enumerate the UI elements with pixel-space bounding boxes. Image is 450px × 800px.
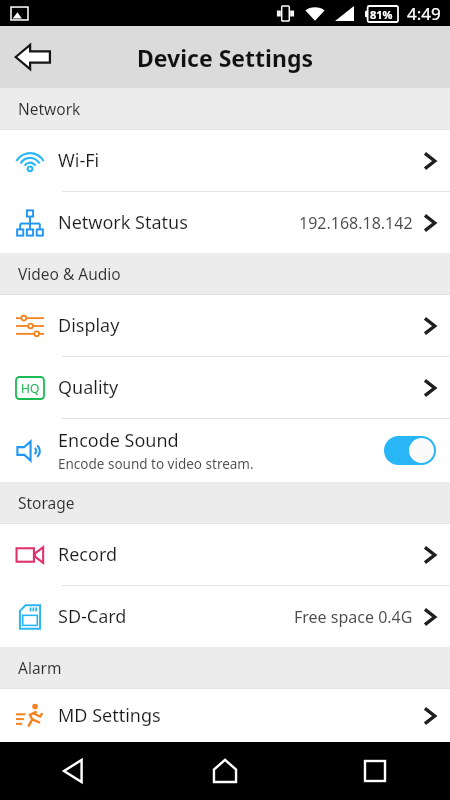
button[interactable]: SD-Card: [0, 586, 450, 647]
button[interactable]: MD Settings: [0, 689, 450, 742]
staticText: HQ: [21, 380, 40, 396]
staticText: 4:49: [407, 2, 441, 25]
staticText: Video & Audio: [18, 263, 121, 284]
button[interactable]: Home: [150, 742, 300, 800]
button[interactable]: HQ: [0, 357, 450, 418]
button[interactable]: Display: [0, 295, 450, 356]
button[interactable]: Back: [6, 30, 60, 84]
staticText: Network Status: [58, 210, 299, 235]
button[interactable]: Network Status: [0, 192, 450, 253]
staticText: Network: [18, 98, 81, 119]
staticText: 81%: [370, 7, 393, 22]
staticText: Quality: [58, 375, 423, 400]
staticText: Display: [58, 313, 423, 338]
staticText: Wi-Fi: [58, 148, 423, 173]
button[interactable]: Wi-Fi: [0, 130, 450, 191]
staticText: Storage: [18, 492, 75, 513]
button[interactable]: Recents: [300, 742, 450, 800]
staticText: Encode Sound: [58, 428, 179, 453]
staticText: Free space 0.4G: [294, 606, 413, 628]
button[interactable]: Encode Sound toggle: [384, 436, 436, 465]
button[interactable]: Encode Sound: [0, 419, 450, 482]
staticText: Alarm: [18, 657, 62, 678]
staticText: Device Settings: [137, 42, 313, 73]
staticText: Encode sound to video stream.: [58, 455, 254, 473]
button[interactable]: Back: [0, 742, 150, 800]
staticText: 192.168.18.142: [299, 212, 413, 234]
staticText: SD-Card: [58, 604, 294, 629]
staticText: Record: [58, 542, 423, 567]
staticText: MD Settings: [58, 703, 423, 728]
button[interactable]: Record: [0, 524, 450, 585]
